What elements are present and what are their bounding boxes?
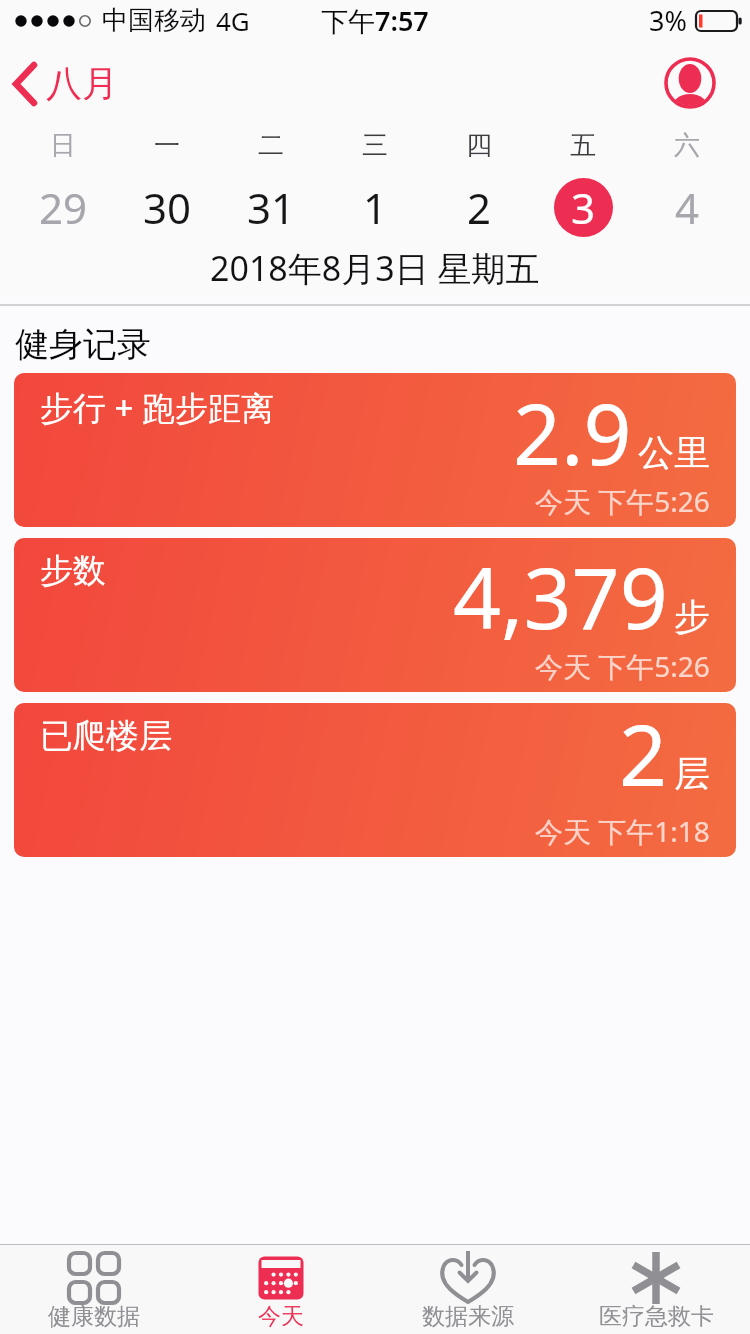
staticText: 30 xyxy=(143,179,192,236)
staticText: 2 xyxy=(619,696,668,810)
staticText: 一 xyxy=(154,129,180,162)
staticText: 1 xyxy=(363,179,388,236)
staticText: 2 xyxy=(467,179,492,236)
staticText: 健康数据 xyxy=(48,1302,140,1331)
staticText: 下午7:57 xyxy=(321,2,429,39)
staticText: 公里 xyxy=(638,430,710,475)
button[interactable]: 3 xyxy=(531,176,635,238)
staticText: 4 xyxy=(675,179,700,236)
button[interactable]: 31 xyxy=(219,176,323,238)
button[interactable]: 1 xyxy=(323,176,427,238)
button[interactable]: 4 xyxy=(635,176,739,238)
staticText: 今天 下午1:18 xyxy=(535,812,710,850)
staticText: 29 xyxy=(39,179,88,236)
staticText: 今天 下午5:26 xyxy=(535,647,710,685)
staticText: 2018年8月3日 星期五 xyxy=(210,245,540,291)
staticText: 五 xyxy=(570,129,596,162)
button[interactable]: 30 xyxy=(115,176,219,238)
staticText: 数据来源 xyxy=(422,1302,514,1331)
staticText: 3% xyxy=(649,2,687,39)
staticText: 六 xyxy=(674,129,700,162)
staticText: 步 xyxy=(674,594,710,639)
button[interactable]: 健康数据 xyxy=(0,1245,187,1334)
staticText: 已爬楼层 xyxy=(40,715,172,757)
button[interactable]: 步数 xyxy=(14,538,736,692)
staticText: 步数 xyxy=(40,550,106,592)
staticText: 今天 xyxy=(258,1302,304,1331)
staticText: 八月 xyxy=(46,61,118,106)
button[interactable]: 今天 xyxy=(187,1245,374,1334)
button[interactable]: 医疗急救卡 xyxy=(562,1245,750,1334)
staticText: 2.9 xyxy=(513,375,632,489)
staticText: 医疗急救卡 xyxy=(599,1302,714,1331)
staticText: 中国移动 xyxy=(102,4,206,37)
button[interactable]: 2 xyxy=(427,176,531,238)
staticText: 三 xyxy=(362,129,388,162)
staticText: 层 xyxy=(674,751,710,796)
staticText: 4G xyxy=(216,3,250,38)
staticText: 3 xyxy=(571,179,596,236)
staticText: 4,379 xyxy=(453,539,668,653)
button[interactable]: 29 xyxy=(11,176,115,238)
button[interactable]: 八月 xyxy=(12,61,118,106)
button[interactable]: 已爬楼层 xyxy=(14,703,736,857)
staticText: 今天 下午5:26 xyxy=(535,482,710,520)
staticText: 二 xyxy=(258,129,284,162)
staticText: 步行 + 跑步距离 xyxy=(40,385,275,430)
staticText: 日 xyxy=(50,129,76,162)
button[interactable]: 数据来源 xyxy=(374,1245,562,1334)
staticText: 四 xyxy=(466,129,492,162)
button[interactable]: 步行 + 跑步距离 xyxy=(14,373,736,527)
staticText: 健身记录 xyxy=(15,323,151,366)
button[interactable] xyxy=(664,57,716,109)
staticText: 31 xyxy=(247,179,296,236)
